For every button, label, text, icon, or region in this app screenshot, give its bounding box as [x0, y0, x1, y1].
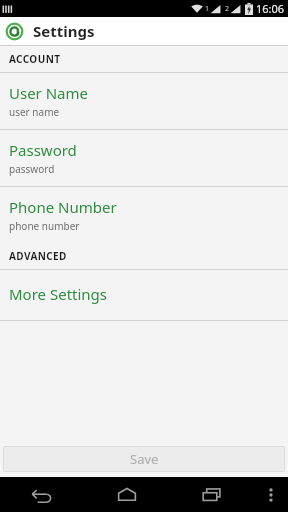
- staticText: Settings: [33, 21, 95, 41]
- button[interactable]: Password: [0, 130, 288, 186]
- staticText: ACCOUNT: [9, 52, 61, 66]
- staticText: User Name: [9, 83, 89, 103]
- button[interactable]: More Settings: [0, 270, 288, 320]
- staticText: More Settings: [9, 284, 108, 304]
- staticText: password: [9, 162, 55, 176]
- staticText: user name: [9, 105, 60, 119]
- button[interactable]: Back: [0, 477, 84, 512]
- staticText: 16:06: [256, 1, 285, 16]
- staticText: Password: [9, 140, 77, 160]
- staticText: Phone Number: [9, 197, 117, 217]
- staticText: 2: [225, 4, 230, 14]
- button[interactable]: Save: [3, 446, 285, 472]
- staticText: Save: [130, 450, 159, 468]
- staticText: phone number: [9, 219, 80, 233]
- button[interactable]: Recent apps: [169, 477, 254, 512]
- button[interactable]: More options: [254, 477, 288, 512]
- staticText: 1: [205, 4, 210, 14]
- button[interactable]: Home: [84, 477, 169, 512]
- button[interactable]: User Name: [0, 73, 288, 129]
- staticText: ADVANCED: [9, 249, 67, 263]
- button[interactable]: Phone Number: [0, 187, 288, 243]
